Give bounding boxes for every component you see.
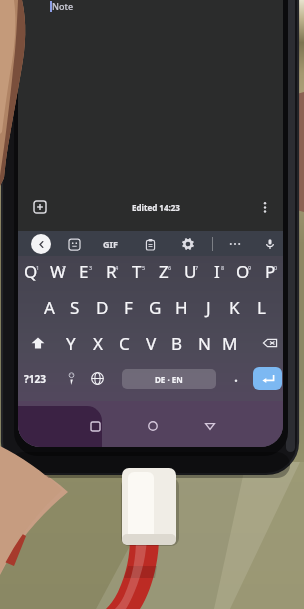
staticText: I	[214, 260, 220, 283]
button[interactable]: O	[231, 259, 255, 283]
button[interactable]: Q	[19, 259, 43, 283]
button[interactable]: Comma	[61, 368, 81, 388]
button[interactable]: S	[63, 295, 87, 319]
button[interactable]: Recents	[83, 414, 107, 438]
button[interactable]: Stickers	[63, 233, 85, 255]
button[interactable]: D	[90, 295, 114, 319]
staticText: GIF	[103, 238, 118, 250]
staticText: 0	[274, 264, 278, 271]
button[interactable]: V	[139, 331, 163, 355]
staticText: V	[146, 332, 157, 355]
staticText: 2	[62, 264, 66, 271]
button[interactable]: More options	[254, 196, 276, 218]
staticText: T	[132, 260, 142, 283]
button[interactable]: N	[192, 331, 216, 355]
staticText: 4	[115, 264, 119, 271]
button[interactable]: Shift	[25, 330, 51, 356]
button[interactable]: Z	[152, 259, 176, 283]
button[interactable]: Back	[198, 414, 222, 438]
staticText: Note	[52, 0, 74, 12]
staticText: U	[184, 260, 197, 283]
button[interactable]: GIF	[97, 233, 123, 255]
staticText: R	[106, 260, 117, 283]
button[interactable]: M	[218, 331, 242, 355]
button[interactable]: Add item	[28, 195, 52, 219]
staticText: Z	[159, 260, 169, 283]
button[interactable]: A	[37, 295, 61, 319]
button[interactable]: Voice input	[259, 233, 281, 255]
button[interactable]: Back	[31, 234, 51, 254]
button[interactable]: U	[178, 259, 202, 283]
staticText: 3	[89, 264, 93, 271]
button[interactable]: Settings	[177, 233, 199, 255]
button[interactable]: Enter	[253, 367, 282, 390]
staticText: B	[171, 332, 183, 355]
button[interactable]: DE · EN	[122, 369, 216, 389]
button[interactable]: I	[205, 259, 229, 283]
button[interactable]: G	[143, 295, 167, 319]
button[interactable]: Change language	[87, 368, 107, 388]
staticText: O	[236, 260, 250, 283]
staticText: W	[50, 260, 66, 283]
staticText: A	[44, 296, 55, 319]
staticText: X	[93, 332, 103, 355]
staticText: H	[175, 296, 188, 319]
staticText: D	[96, 296, 109, 319]
button[interactable]: E	[72, 259, 96, 283]
staticText: S	[70, 296, 80, 319]
button[interactable]: Y	[59, 331, 83, 355]
button[interactable]: F	[116, 295, 140, 319]
button[interactable]: Clipboard	[139, 233, 161, 255]
staticText: ?123	[24, 372, 46, 386]
button[interactable]: C	[112, 331, 136, 355]
button[interactable]: R	[99, 259, 123, 283]
button[interactable]: More	[224, 233, 246, 255]
staticText: C	[119, 332, 130, 355]
staticText: 6	[168, 264, 172, 271]
button[interactable]: Backspace	[257, 330, 283, 356]
button[interactable]: B	[165, 331, 189, 355]
staticText: N	[198, 332, 211, 355]
button[interactable]: P	[258, 259, 282, 283]
button[interactable]: J	[196, 295, 220, 319]
staticText: L	[257, 296, 266, 319]
staticText: G	[149, 296, 162, 319]
staticText: Y	[66, 332, 76, 355]
staticText: 7	[195, 264, 199, 271]
staticText: Edited 14:23	[132, 202, 180, 213]
button[interactable]: T	[125, 259, 149, 283]
staticText: 5	[142, 264, 146, 271]
button[interactable]: W	[46, 259, 70, 283]
button[interactable]: X	[86, 331, 110, 355]
staticText: 1	[36, 264, 40, 271]
staticText: Q	[24, 260, 38, 283]
button[interactable]: L	[249, 295, 273, 319]
button[interactable]: K	[222, 295, 246, 319]
button[interactable]: Home	[141, 414, 165, 438]
button[interactable]: ?123	[19, 368, 51, 390]
staticText: J	[206, 296, 211, 319]
staticText: M	[222, 332, 238, 355]
staticText: E	[79, 260, 89, 283]
button[interactable]: Period	[226, 369, 246, 389]
staticText: K	[229, 296, 240, 319]
button[interactable]: H	[169, 295, 193, 319]
staticText: P	[265, 260, 276, 283]
staticText: 8	[221, 264, 225, 271]
staticText: 9	[248, 264, 252, 271]
staticText: DE · EN	[155, 374, 183, 385]
staticText: F	[124, 296, 133, 319]
